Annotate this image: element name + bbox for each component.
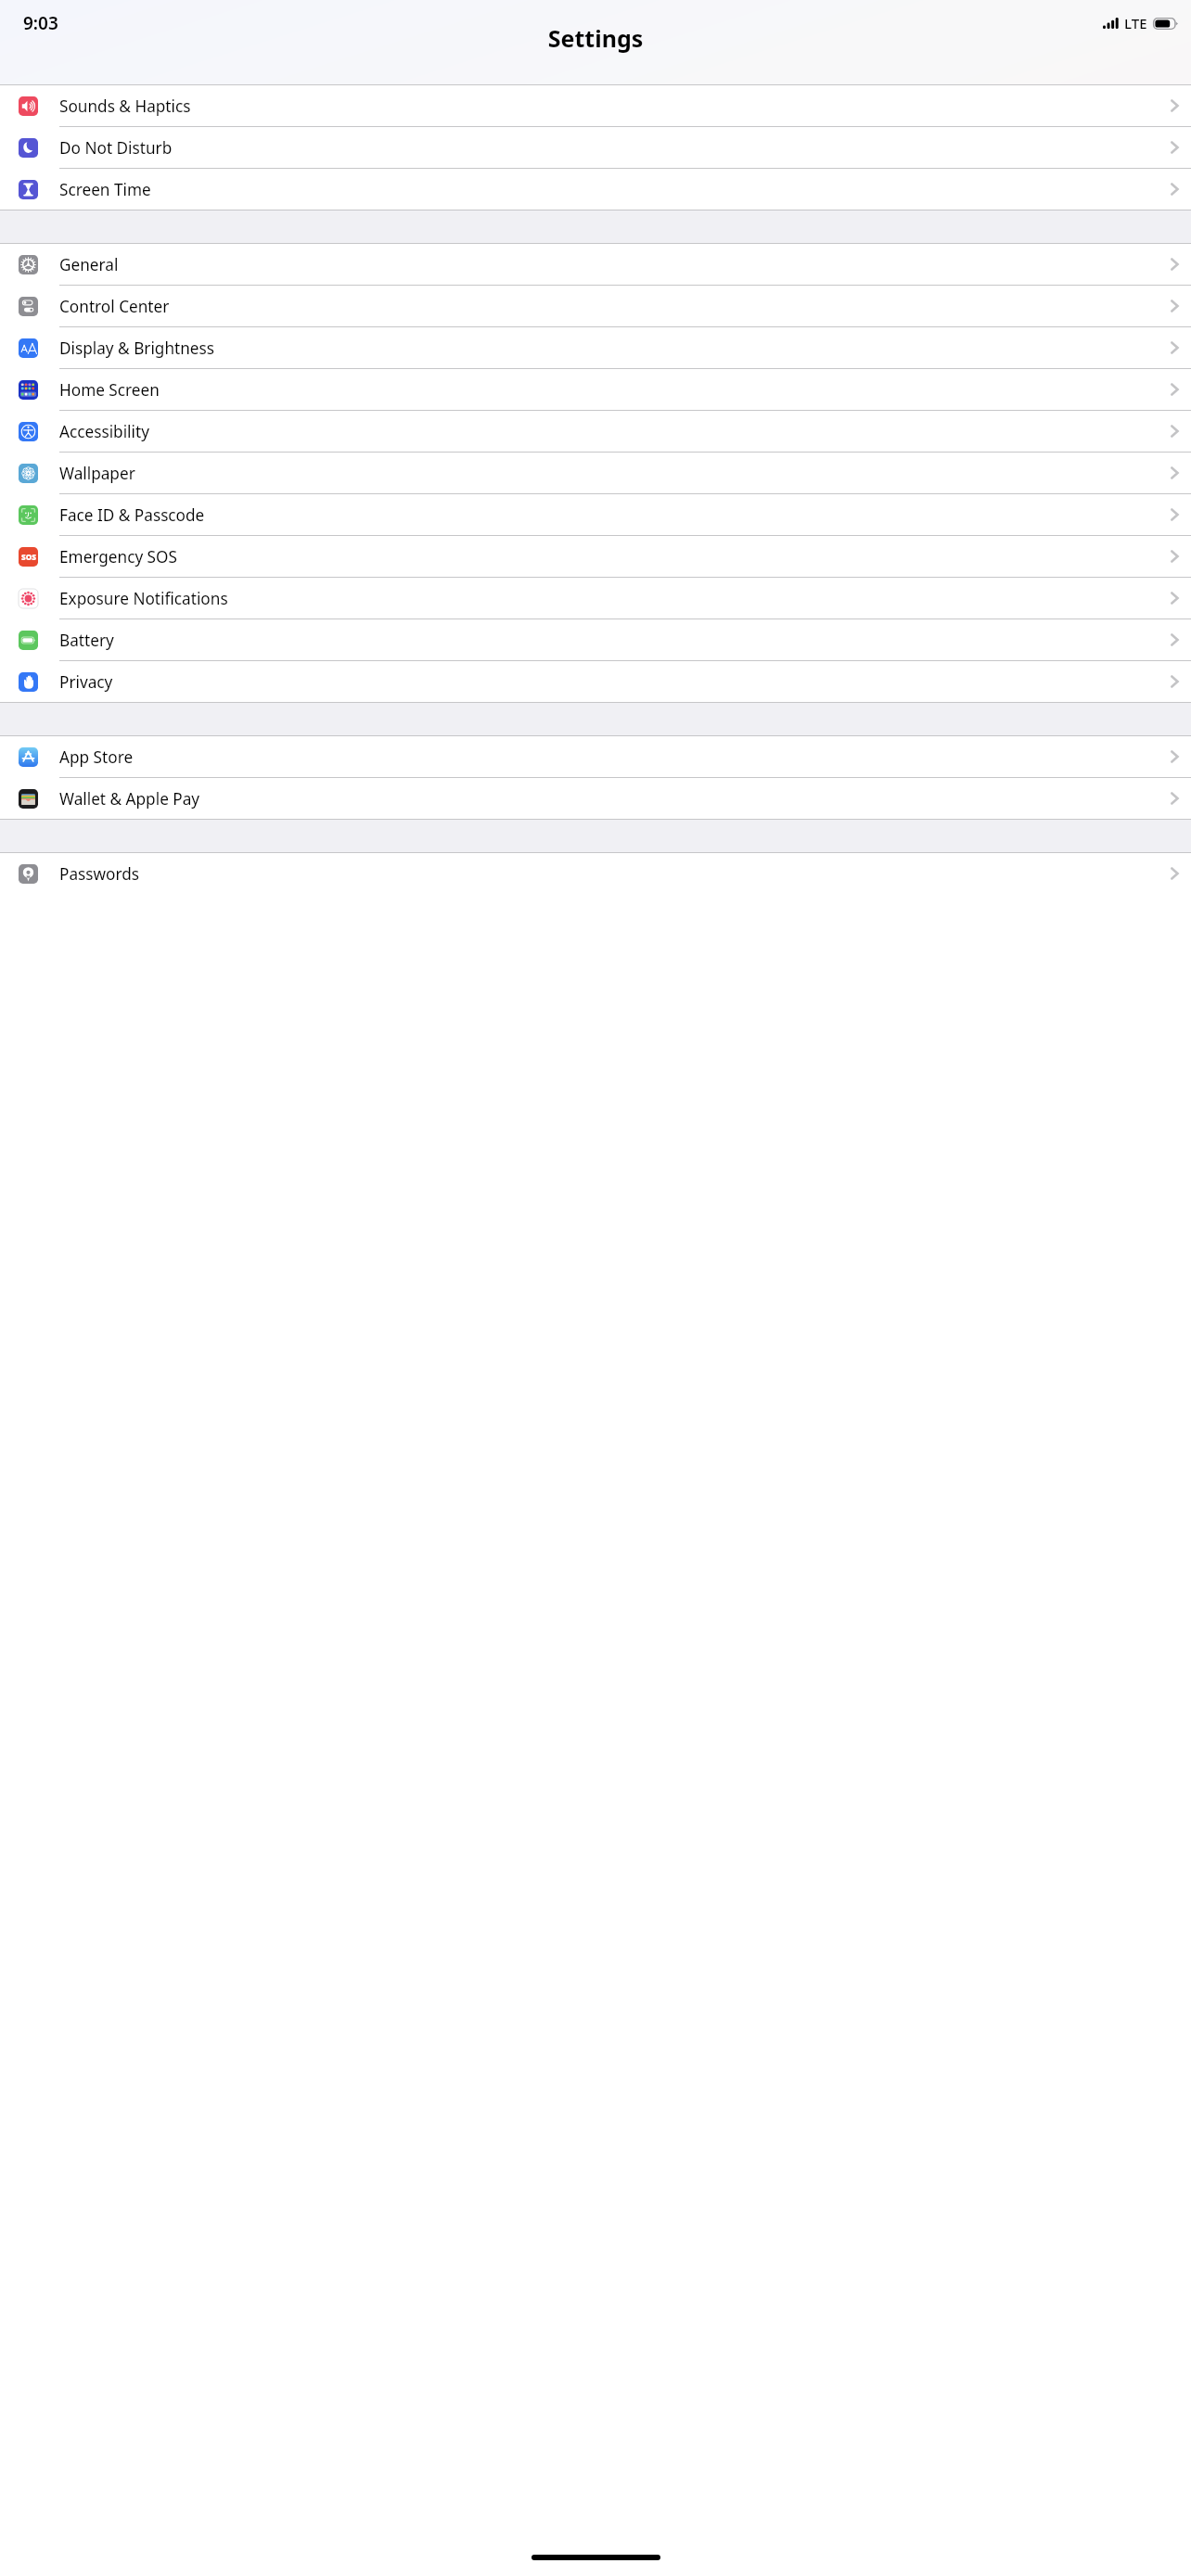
button[interactable]: Exposure Notifications	[0, 578, 1191, 618]
button[interactable]: Privacy	[0, 661, 1191, 702]
staticText: Wallet & Apple Pay	[59, 788, 1171, 810]
staticText: Home Screen	[59, 379, 1171, 401]
button[interactable]: Control Center	[0, 286, 1191, 326]
staticText: Screen Time	[59, 179, 1171, 200]
staticText: 9:03	[23, 11, 58, 35]
button[interactable]: Do Not Disturb	[0, 127, 1191, 168]
staticText: Exposure Notifications	[59, 588, 1171, 609]
staticText: Control Center	[59, 296, 1171, 317]
staticText: Settings	[0, 22, 1191, 54]
staticText: Privacy	[59, 671, 1171, 693]
button[interactable]: Wallpaper	[0, 453, 1191, 493]
staticText: SOS	[21, 552, 36, 562]
button[interactable]: Sounds & Haptics	[0, 85, 1191, 126]
staticText: Emergency SOS	[59, 546, 1171, 567]
button[interactable]: Battery	[0, 619, 1191, 660]
button[interactable]: Screen Time	[0, 169, 1191, 210]
staticText: Passwords	[59, 863, 1171, 885]
staticText: General	[59, 254, 1171, 275]
staticText: Face ID & Passcode	[59, 504, 1171, 526]
staticText: Accessibility	[59, 421, 1171, 442]
staticText: App Store	[59, 746, 1171, 768]
button[interactable]: Face ID & Passcode	[0, 494, 1191, 535]
staticText: Do Not Disturb	[59, 137, 1171, 159]
staticText: Battery	[59, 630, 1171, 651]
button[interactable]: Home Screen	[0, 369, 1191, 410]
staticText: LTE	[1124, 14, 1147, 32]
button[interactable]: General	[0, 244, 1191, 285]
button[interactable]: Passwords	[0, 853, 1191, 894]
staticText: Display & Brightness	[59, 338, 1171, 359]
button[interactable]: Accessibility	[0, 411, 1191, 452]
staticText: Wallpaper	[59, 463, 1171, 484]
button[interactable]: Display & Brightness	[0, 327, 1191, 368]
staticText: Sounds & Haptics	[59, 96, 1171, 117]
button[interactable]: App Store	[0, 736, 1191, 777]
button[interactable]: SOS	[0, 536, 1191, 577]
button[interactable]: Wallet & Apple Pay	[0, 778, 1191, 819]
